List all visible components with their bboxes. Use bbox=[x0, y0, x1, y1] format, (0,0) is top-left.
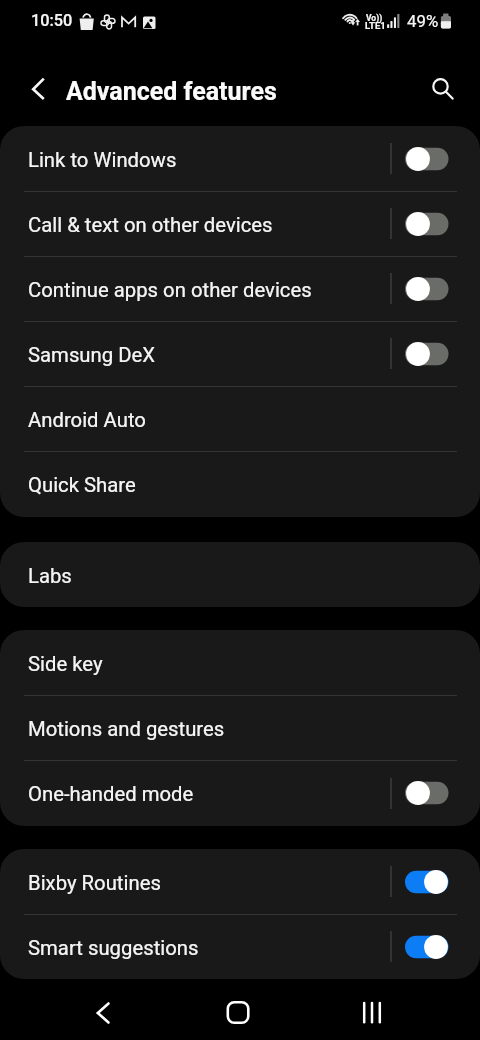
staticText: Smart suggestions bbox=[28, 936, 199, 960]
button[interactable]: On bbox=[403, 866, 451, 898]
staticText: Vo)) bbox=[366, 13, 383, 23]
staticText: Advanced features bbox=[66, 77, 277, 106]
staticText: 49% bbox=[407, 11, 439, 31]
button[interactable]: Continue apps on other devices bbox=[0, 256, 480, 321]
button[interactable]: Search bbox=[416, 62, 466, 112]
button[interactable]: Motions and gestures bbox=[0, 695, 480, 760]
staticText: Labs bbox=[28, 564, 72, 588]
staticText: One-handed mode bbox=[28, 782, 194, 806]
button[interactable]: Off bbox=[403, 143, 451, 175]
staticText: LTE1 bbox=[365, 20, 386, 31]
button[interactable]: Quick Share bbox=[0, 451, 480, 517]
button[interactable]: Off bbox=[403, 338, 451, 370]
staticText: Bixby Routines bbox=[28, 871, 161, 895]
staticText: Quick Share bbox=[28, 473, 136, 497]
button[interactable]: Link to Windows bbox=[0, 126, 480, 191]
button[interactable]: Samsung DeX bbox=[0, 321, 480, 386]
button[interactable]: Off bbox=[403, 273, 451, 305]
button[interactable]: Smart suggestions bbox=[0, 914, 480, 979]
button[interactable]: Back bbox=[80, 990, 126, 1036]
button[interactable]: Call & text on other devices bbox=[0, 191, 480, 256]
button[interactable]: Off bbox=[403, 208, 451, 240]
staticText: Continue apps on other devices bbox=[28, 278, 312, 302]
button[interactable]: Labs bbox=[0, 542, 480, 607]
staticText: Link to Windows bbox=[28, 148, 177, 172]
button[interactable]: Navigate up bbox=[12, 65, 62, 115]
staticText: Side key bbox=[28, 652, 103, 676]
button[interactable]: Home bbox=[215, 990, 261, 1036]
button[interactable]: Bixby Routines bbox=[0, 849, 480, 914]
button[interactable]: One-handed mode bbox=[0, 760, 480, 826]
button[interactable]: Off bbox=[403, 777, 451, 809]
staticText: Android Auto bbox=[28, 408, 146, 432]
staticText: Samsung DeX bbox=[28, 343, 156, 367]
button[interactable]: Side key bbox=[0, 630, 480, 695]
button[interactable]: On bbox=[403, 931, 451, 963]
staticText: 10:50 bbox=[31, 11, 73, 30]
button[interactable]: Recent apps bbox=[349, 990, 395, 1036]
staticText: Call & text on other devices bbox=[28, 213, 273, 237]
button[interactable]: Android Auto bbox=[0, 386, 480, 451]
staticText: Motions and gestures bbox=[28, 717, 225, 741]
